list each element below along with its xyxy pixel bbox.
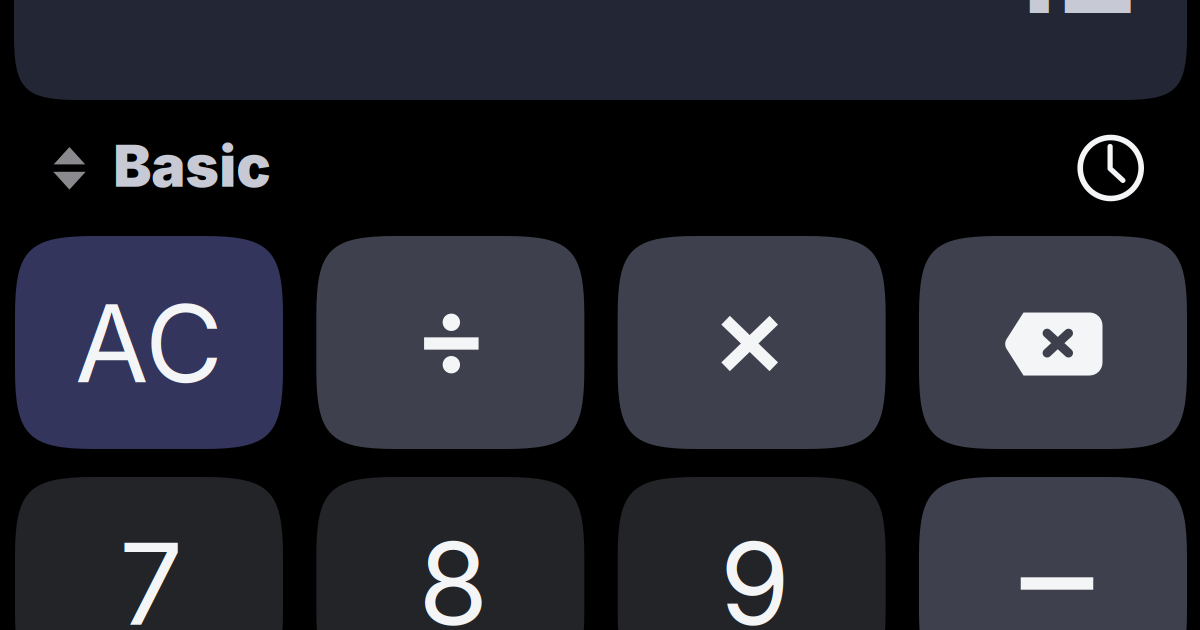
staticText: Basic xyxy=(113,131,271,201)
button[interactable]: Basic xyxy=(45,118,277,216)
button[interactable]: 8 xyxy=(316,477,584,630)
button[interactable]: Delete xyxy=(919,236,1187,449)
button[interactable]: Minus xyxy=(919,477,1187,630)
button[interactable]: Divide xyxy=(316,236,584,449)
button[interactable]: Multiply xyxy=(618,236,886,449)
staticText: 9 xyxy=(720,515,790,630)
staticText: 12 xyxy=(1002,0,1138,44)
staticText: 7 xyxy=(119,515,183,630)
button[interactable]: 7 xyxy=(15,477,283,630)
button[interactable]: AC xyxy=(15,236,283,449)
staticText: AC xyxy=(75,279,223,408)
button[interactable]: History xyxy=(1065,123,1155,213)
staticText: 8 xyxy=(418,515,488,630)
button[interactable]: 9 xyxy=(618,477,886,630)
